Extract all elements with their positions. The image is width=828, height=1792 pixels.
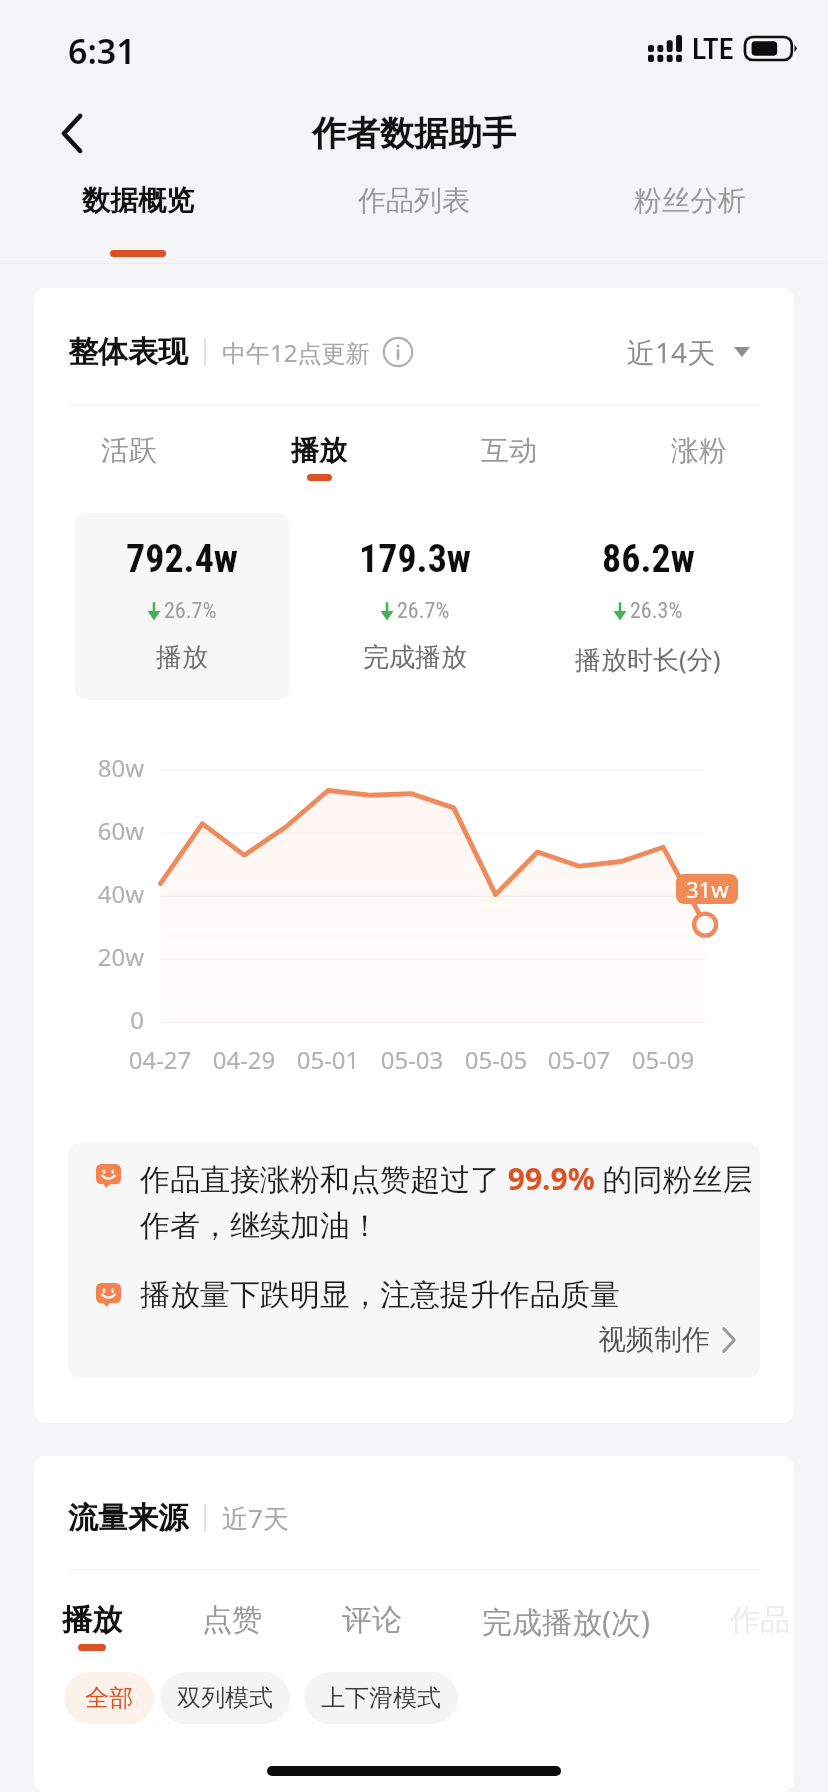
staticText: LTE (692, 31, 734, 66)
staticText: 双列模式 (177, 1683, 273, 1713)
staticText: 粉丝分析 (634, 183, 746, 218)
button[interactable]: 179.3w (307, 513, 522, 700)
button[interactable]: 评论 (342, 1601, 402, 1651)
button[interactable]: 粉丝分析 (552, 176, 828, 264)
button[interactable]: 视频制作 (68, 1322, 736, 1357)
staticText: 整体表现 (68, 333, 188, 371)
button[interactable]: 数据概览 (0, 176, 276, 264)
staticText: 涨粉 (671, 433, 727, 468)
staticText: 播放量下跌明显，注意提升作品质量 (140, 1276, 620, 1314)
staticText: 80w (34, 751, 144, 784)
staticText: 作者数据助手 (312, 112, 516, 155)
button[interactable]: 近14天 (627, 333, 750, 371)
staticText: 04-27 (100, 1043, 220, 1076)
staticText: 全部 (85, 1683, 133, 1713)
staticText: 05-07 (519, 1043, 639, 1076)
staticText: 作品列表 (358, 183, 470, 218)
staticText: 31w (686, 874, 729, 904)
button[interactable]: 作品 (730, 1601, 790, 1651)
staticText: 26.3% (630, 598, 683, 624)
button[interactable]: Info (380, 334, 416, 370)
button[interactable]: 作品列表 (276, 176, 552, 264)
staticText: 近14天 (627, 333, 716, 371)
button[interactable]: 点赞 (202, 1601, 262, 1651)
staticText: 近7天 (222, 1500, 289, 1536)
staticText: 20w (34, 940, 144, 973)
staticText: 流量来源 (68, 1499, 188, 1537)
staticText: 视频制作 (598, 1322, 710, 1357)
staticText: 作品直接涨粉和点赞超过了 99.9% 的同粉丝层 (140, 1158, 753, 1199)
staticText: 互动 (481, 433, 537, 468)
staticText: 05-03 (352, 1043, 472, 1076)
button[interactable]: 上下滑模式 (304, 1672, 458, 1724)
button[interactable]: 86.2w (540, 513, 755, 703)
staticText: 179.3w (359, 537, 471, 582)
button[interactable]: 完成播放(次) (482, 1601, 650, 1654)
button[interactable]: 全部 (64, 1672, 154, 1724)
staticText: 60w (34, 814, 144, 847)
staticText: 播放 (291, 433, 347, 468)
button[interactable]: 播放 (62, 1601, 122, 1651)
button[interactable]: 双列模式 (160, 1672, 290, 1724)
staticText: 26.7% (397, 598, 450, 624)
staticText: 作者，继续加油！ (140, 1207, 380, 1245)
staticText: 上下滑模式 (321, 1683, 441, 1713)
staticText: 播放时长(分) (575, 641, 721, 677)
staticText: 05-09 (603, 1043, 723, 1076)
button[interactable]: 涨粉 (604, 433, 794, 481)
button[interactable]: 活跃 (34, 433, 224, 481)
staticText: 05-05 (436, 1043, 556, 1076)
staticText: 40w (34, 877, 144, 910)
staticText: 数据概览 (82, 183, 194, 218)
staticText: 播放 (156, 641, 208, 674)
staticText: 04-29 (184, 1043, 304, 1076)
staticText: 评论 (342, 1601, 402, 1639)
staticText: 中午12点更新 (222, 336, 370, 369)
staticText: 作品 (730, 1601, 790, 1639)
staticText: 0 (34, 1003, 144, 1036)
staticText: 792.4w (126, 537, 238, 582)
staticText: 86.2w (602, 537, 695, 582)
button[interactable]: 792.4w (75, 513, 289, 700)
staticText: 完成播放(次) (482, 1601, 650, 1642)
staticText: 26.7% (164, 598, 217, 624)
staticText: 05-01 (268, 1043, 388, 1076)
staticText: 点赞 (202, 1601, 262, 1639)
staticText: 播放 (62, 1601, 122, 1639)
button[interactable]: 互动 (414, 433, 604, 481)
button[interactable]: Back (30, 91, 114, 175)
button[interactable]: 播放 (224, 433, 414, 481)
staticText: 活跃 (101, 433, 157, 468)
staticText: 6:31 (68, 28, 136, 74)
staticText: 完成播放 (363, 641, 467, 674)
